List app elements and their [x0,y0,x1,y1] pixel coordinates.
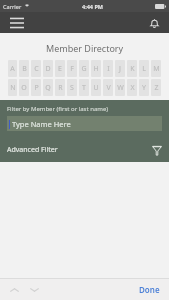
button[interactable]: Advanced Filter [0,141,169,159]
button[interactable]: L [139,60,149,77]
staticText: K [130,64,135,74]
button[interactable]: V [103,79,113,96]
button[interactable]: Previous field [6,282,22,298]
button[interactable]: X [127,79,137,96]
staticText: L [142,64,146,74]
staticText: B [22,64,27,74]
button[interactable]: Open navigation menu [6,12,28,33]
staticText: H [93,64,99,74]
button[interactable]: Y [139,79,149,96]
button[interactable]: R [55,79,65,96]
button[interactable]: I [103,60,113,77]
button[interactable]: P [31,79,41,96]
button[interactable]: U [91,79,101,96]
button[interactable]: Type Name Here [7,116,162,131]
button[interactable]: D [43,60,53,77]
button[interactable]: W [115,79,125,96]
staticText: N [10,83,16,93]
button[interactable]: E [55,60,65,77]
staticText: 4:44 PM [82,3,103,10]
button[interactable]: H [91,60,101,77]
button[interactable]: N [8,79,17,96]
staticText: Member Directory [46,42,124,54]
button[interactable]: T [79,79,89,96]
button[interactable]: Z [151,79,161,96]
staticText: Filter by Member (first or last name) [7,105,109,113]
button[interactable]: Q [43,79,53,96]
staticText: M [153,64,160,74]
staticText: S [70,83,74,93]
staticText: O [21,83,27,93]
staticText: Carrier [3,3,22,10]
staticText: I [107,64,110,74]
staticText: E [58,64,62,74]
staticText: J [119,64,121,74]
staticText: Z [154,83,159,93]
staticText: D [45,64,51,74]
button[interactable]: Notifications [144,13,164,33]
button[interactable]: G [79,60,89,77]
staticText: R [58,83,63,93]
button[interactable]: K [127,60,137,77]
button[interactable]: S [67,79,77,96]
staticText: G [81,64,87,74]
staticText: A [10,64,15,74]
button[interactable]: Done [136,282,163,297]
staticText: P [34,83,39,93]
staticText: U [93,83,99,93]
button[interactable]: B [19,60,29,77]
staticText: F [70,64,74,74]
button[interactable]: A [8,60,17,77]
staticText: Advanced Filter [7,145,58,155]
staticText: V [106,83,111,93]
button[interactable]: F [67,60,77,77]
button[interactable]: M [151,60,161,77]
staticText: W [117,83,124,93]
staticText: Q [45,83,51,93]
staticText: Y [142,83,146,93]
staticText: C [34,64,39,74]
staticText: T [82,83,86,93]
button[interactable]: J [115,60,125,77]
button[interactable]: O [19,79,29,96]
staticText: X [130,83,135,93]
button[interactable]: Next field [26,282,42,298]
staticText: Type Name Here [12,119,71,129]
staticText: Done [139,284,160,295]
button[interactable]: C [31,60,41,77]
